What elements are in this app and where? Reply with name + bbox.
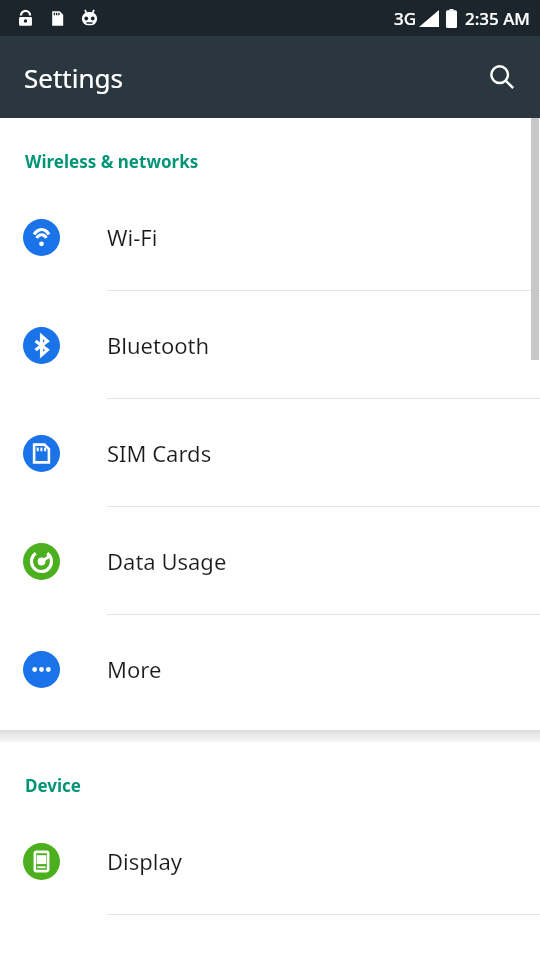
button[interactable]: Search [474,49,530,105]
staticText: 3G [394,7,417,30]
staticText: SIM Cards [107,438,212,468]
button[interactable]: Data Usage [0,507,540,615]
button[interactable]: Bluetooth [0,291,540,399]
button[interactable]: More [0,615,540,723]
staticText: 2:35 AM [465,7,530,30]
staticText: More [107,654,162,684]
staticText: Device [25,774,81,797]
staticText: Data Usage [107,546,227,576]
staticText: Settings [24,60,123,95]
button[interactable]: Display [0,807,540,915]
staticText: Wi-Fi [107,222,158,252]
button[interactable]: SIM Cards [0,399,540,507]
staticText: Wireless & networks [25,150,199,173]
staticText: Display [107,846,183,876]
staticText: Bluetooth [107,330,210,360]
button[interactable]: Wi-Fi [0,183,540,291]
